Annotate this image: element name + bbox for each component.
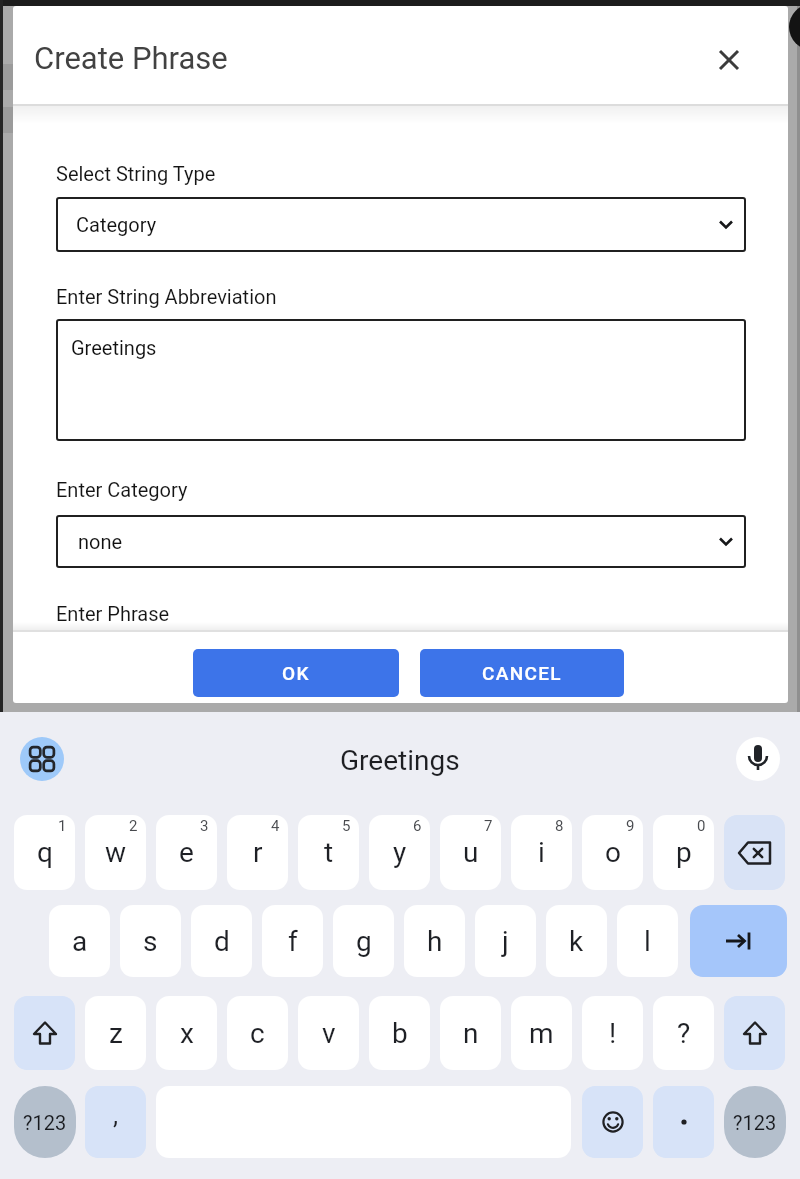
staticText: Create Phrase	[34, 40, 228, 76]
staticText: 1	[58, 817, 67, 835]
staticText: s	[143, 925, 158, 958]
button[interactable]: j	[475, 905, 536, 977]
staticText: Enter Category	[56, 478, 188, 501]
staticText: b	[392, 1017, 408, 1050]
staticText: 2	[129, 817, 138, 835]
button[interactable]: d	[191, 905, 252, 977]
staticText: l	[644, 925, 651, 958]
staticText: n	[463, 1017, 479, 1050]
staticText: f	[288, 925, 298, 958]
button[interactable]: r	[227, 815, 288, 890]
staticText: 4	[271, 817, 280, 835]
button[interactable]: OK	[193, 649, 399, 697]
button[interactable]	[736, 737, 780, 781]
staticText: Enter Phrase	[56, 602, 170, 625]
staticText: none	[78, 530, 123, 553]
staticText: p	[676, 836, 692, 869]
staticText: r	[253, 836, 263, 869]
staticText: w	[105, 836, 127, 869]
staticText: x	[180, 1017, 194, 1050]
staticText: CANCEL	[482, 662, 562, 684]
button[interactable]: z	[85, 996, 146, 1070]
button[interactable]: s	[120, 905, 181, 977]
staticText: q	[37, 836, 53, 869]
button[interactable]	[707, 38, 751, 82]
button[interactable]: x	[156, 996, 217, 1070]
button[interactable]: n	[440, 996, 501, 1070]
staticText: 3	[200, 817, 209, 835]
button[interactable]: o	[582, 815, 643, 890]
staticText: y	[393, 836, 407, 869]
button[interactable]: Greetings	[56, 319, 746, 441]
staticText: 7	[484, 817, 493, 835]
staticText: OK	[282, 662, 310, 684]
staticText: ?	[677, 1017, 691, 1050]
button[interactable]: p	[653, 815, 714, 890]
staticText: !	[609, 1017, 617, 1050]
button[interactable]: g	[333, 905, 394, 977]
button[interactable]: b	[369, 996, 430, 1070]
button[interactable]: e	[156, 815, 217, 890]
staticText: m	[529, 1017, 554, 1050]
staticText: 6	[413, 817, 422, 835]
staticText: 8	[555, 817, 564, 835]
staticText: u	[463, 836, 479, 869]
button[interactable]: t	[298, 815, 359, 890]
button[interactable]: ,	[85, 1086, 146, 1158]
staticText: t	[324, 836, 334, 869]
button[interactable]: none	[56, 515, 746, 568]
staticText: d	[214, 925, 230, 958]
button[interactable]	[582, 1086, 643, 1158]
button[interactable]	[20, 737, 64, 781]
staticText: h	[427, 925, 443, 958]
staticText: i	[538, 836, 545, 869]
staticText: o	[605, 836, 621, 869]
button[interactable]: !	[582, 996, 643, 1070]
button[interactable]: q	[14, 815, 75, 890]
staticText: 5	[342, 817, 351, 835]
button[interactable]: w	[85, 815, 146, 890]
staticText: g	[356, 925, 372, 958]
button[interactable]: c	[227, 996, 288, 1070]
staticText: k	[569, 925, 584, 958]
button[interactable]: k	[546, 905, 607, 977]
staticText: z	[109, 1017, 123, 1050]
button[interactable]: m	[511, 996, 572, 1070]
staticText: j	[502, 925, 509, 958]
button[interactable]: i	[511, 815, 572, 890]
staticText: 0	[697, 817, 706, 835]
button[interactable]	[653, 1086, 714, 1158]
staticText: Category	[76, 213, 157, 236]
button[interactable]: ?123	[724, 1086, 786, 1158]
staticText: ?123	[733, 1111, 777, 1134]
button[interactable]: CANCEL	[420, 649, 624, 697]
button[interactable]: ?	[653, 996, 714, 1070]
button[interactable]	[724, 815, 785, 890]
button[interactable]: a	[49, 905, 110, 977]
staticText: Greetings	[340, 744, 460, 777]
staticText: ?123	[23, 1111, 67, 1134]
staticText: c	[250, 1017, 265, 1050]
button[interactable]	[14, 996, 75, 1070]
button[interactable]: h	[404, 905, 465, 977]
button[interactable]: y	[369, 815, 430, 890]
button[interactable]: ?123	[14, 1086, 76, 1158]
button[interactable]: v	[298, 996, 359, 1070]
staticText: 9	[626, 817, 635, 835]
staticText: e	[179, 836, 194, 869]
button[interactable]	[724, 996, 785, 1070]
button[interactable]: l	[617, 905, 678, 977]
button[interactable]: f	[262, 905, 323, 977]
button[interactable]	[690, 905, 787, 977]
staticText: Greetings	[71, 336, 157, 359]
staticText: Enter String Abbreviation	[56, 285, 277, 308]
button[interactable]: u	[440, 815, 501, 890]
staticText: a	[72, 925, 88, 958]
staticText: ,	[113, 1100, 119, 1130]
staticText: Select String Type	[56, 162, 216, 185]
staticText: v	[322, 1017, 336, 1050]
button[interactable]: Category	[56, 197, 746, 252]
